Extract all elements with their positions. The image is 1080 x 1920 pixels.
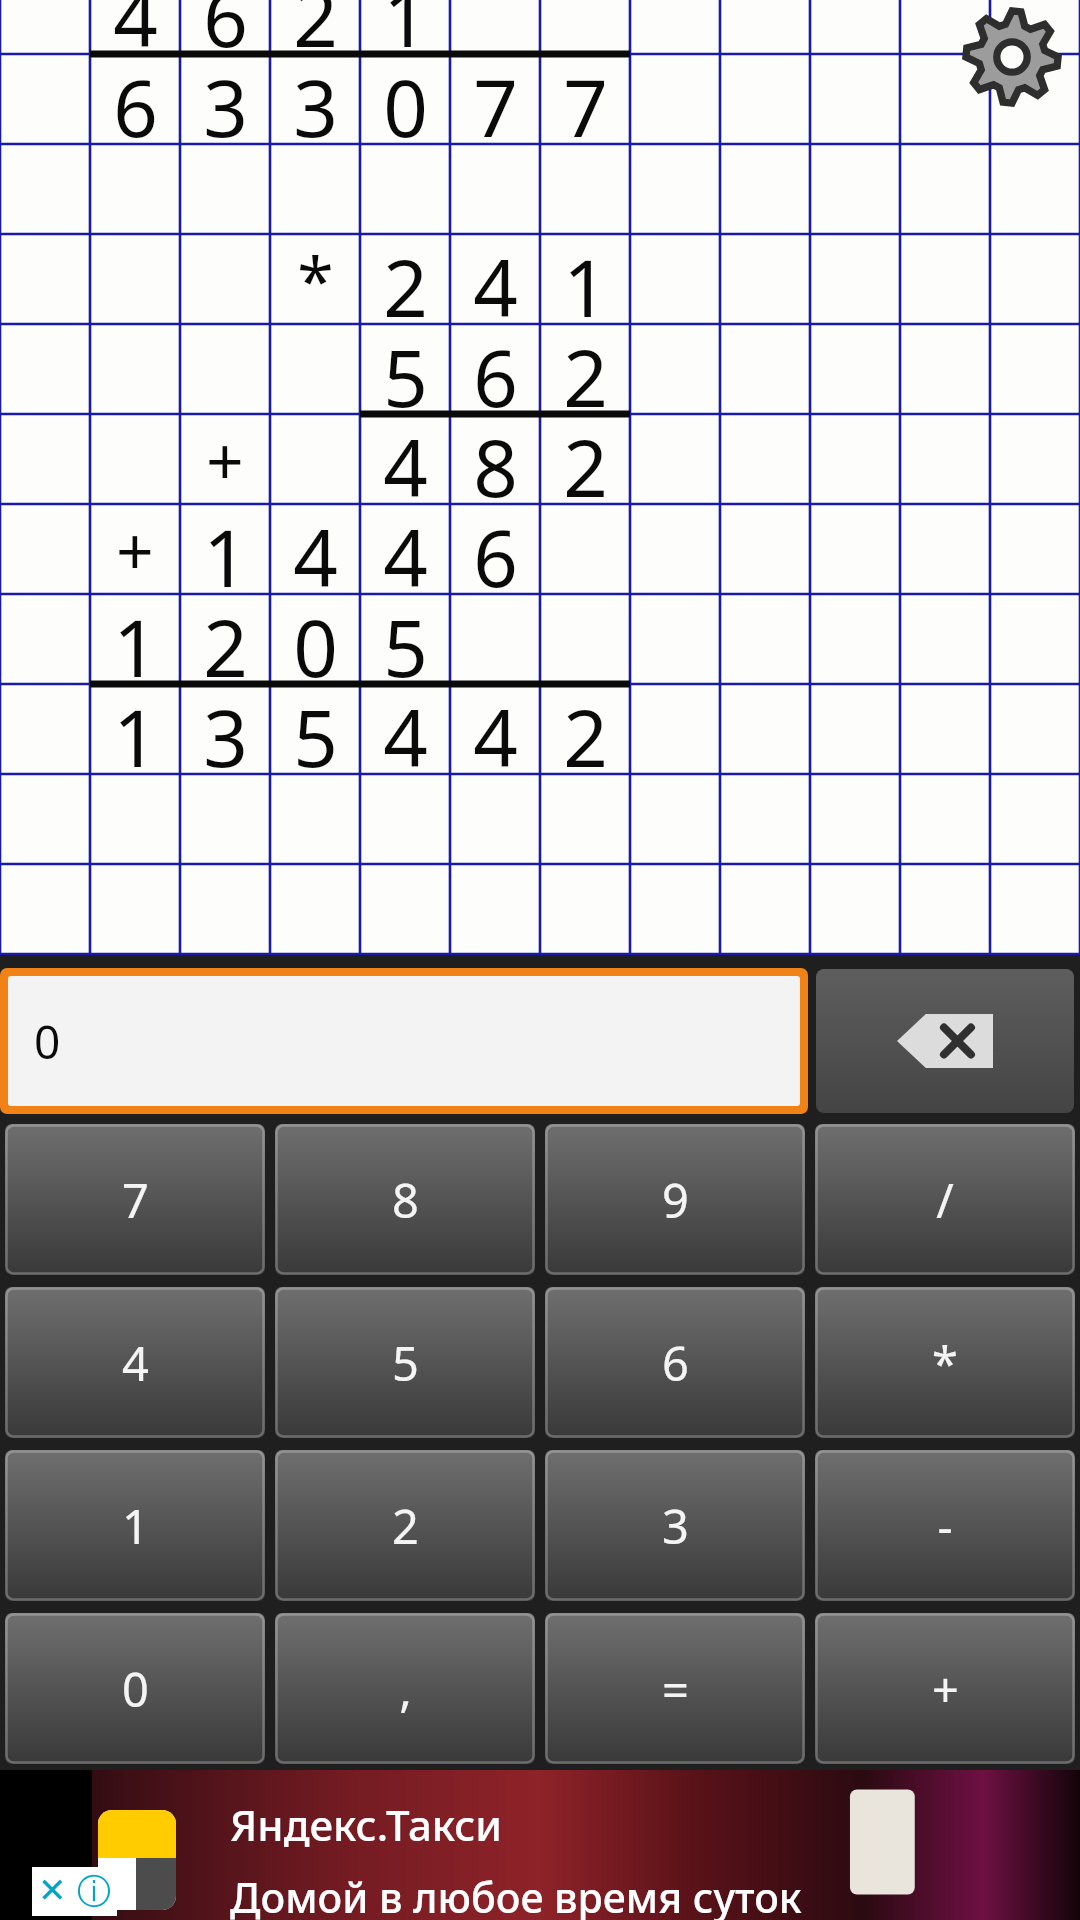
staticText: 2 <box>293 0 338 54</box>
staticText: 6 <box>662 1331 689 1395</box>
button[interactable]: Settings <box>963 8 1061 106</box>
staticText: 6 <box>113 54 158 144</box>
staticText: 5 <box>392 1331 419 1395</box>
staticText: 3 <box>662 1494 689 1558</box>
staticText: 3 <box>203 54 248 144</box>
staticText: ⓘ <box>77 1870 111 1913</box>
staticText: 2 <box>203 594 248 684</box>
staticText: 3 <box>203 684 248 774</box>
staticText: ✕ <box>38 1870 67 1910</box>
button[interactable]: 4 <box>5 1287 265 1438</box>
staticText: 4 <box>473 684 518 774</box>
button[interactable]: 0 <box>8 976 800 1106</box>
staticText: 5 <box>383 324 428 414</box>
staticText: 2 <box>392 1494 419 1558</box>
staticText: 4 <box>383 684 428 774</box>
staticText: , <box>399 1657 412 1721</box>
staticText: 9 <box>662 1168 689 1232</box>
staticText: 8 <box>473 414 518 504</box>
button[interactable]: * <box>815 1287 1075 1438</box>
staticText: * <box>932 1331 958 1395</box>
button[interactable]: = <box>545 1613 805 1764</box>
button[interactable]: 2 <box>275 1450 535 1601</box>
staticText: + <box>932 1657 959 1721</box>
staticText: 5 <box>293 684 338 774</box>
button[interactable]: 5 <box>275 1287 535 1438</box>
staticText: Яндекс.Такси <box>230 1796 503 1853</box>
button[interactable]: / <box>815 1124 1075 1275</box>
button[interactable]: 3 <box>545 1450 805 1601</box>
button[interactable]: Backspace <box>816 969 1074 1113</box>
staticText: 6 <box>473 324 518 414</box>
staticText: Домой в любое время суток <box>230 1869 802 1920</box>
staticText: 7 <box>122 1168 149 1232</box>
button[interactable]: , <box>275 1613 535 1764</box>
button[interactable]: 0 <box>5 1613 265 1764</box>
button[interactable]: 6 <box>545 1287 805 1438</box>
button[interactable]: + <box>815 1613 1075 1764</box>
staticText: 0 <box>34 1010 61 1073</box>
staticText: 1 <box>383 0 428 54</box>
button[interactable]: 1 <box>5 1450 265 1601</box>
staticText: 3 <box>293 54 338 144</box>
staticText: 4 <box>473 234 518 324</box>
staticText: + <box>206 414 244 504</box>
staticText: 2 <box>383 234 428 324</box>
button[interactable]: - <box>815 1450 1075 1601</box>
staticText: 0 <box>293 594 338 684</box>
staticText: 6 <box>473 504 518 594</box>
staticText: 0 <box>383 54 428 144</box>
staticText: = <box>662 1657 689 1721</box>
staticText: 5 <box>383 594 428 684</box>
staticText: 6 <box>203 0 248 54</box>
staticText: + <box>116 504 154 594</box>
staticText: 1 <box>113 594 158 684</box>
staticText: 4 <box>293 504 338 594</box>
button[interactable]: 9 <box>545 1124 805 1275</box>
staticText: 1 <box>563 234 608 324</box>
staticText: 2 <box>563 324 608 414</box>
staticText: 0 <box>122 1657 149 1721</box>
staticText: 1 <box>203 504 248 594</box>
staticText: 8 <box>392 1168 419 1232</box>
staticText: 2 <box>563 414 608 504</box>
staticText: - <box>937 1494 953 1558</box>
staticText: 4 <box>113 0 158 54</box>
staticText: 1 <box>113 684 158 774</box>
staticText: 4 <box>383 504 428 594</box>
staticText: 4 <box>122 1331 149 1395</box>
button[interactable]: Яндекс.Такси <box>0 1770 1080 1920</box>
button[interactable]: 7 <box>5 1124 265 1275</box>
staticText: 7 <box>563 54 608 144</box>
staticText: 2 <box>563 684 608 774</box>
staticText: 7 <box>473 54 518 144</box>
staticText: * <box>297 234 334 324</box>
staticText: 1 <box>122 1494 149 1558</box>
staticText: / <box>936 1168 954 1232</box>
staticText: 4 <box>383 414 428 504</box>
button[interactable]: 8 <box>275 1124 535 1275</box>
